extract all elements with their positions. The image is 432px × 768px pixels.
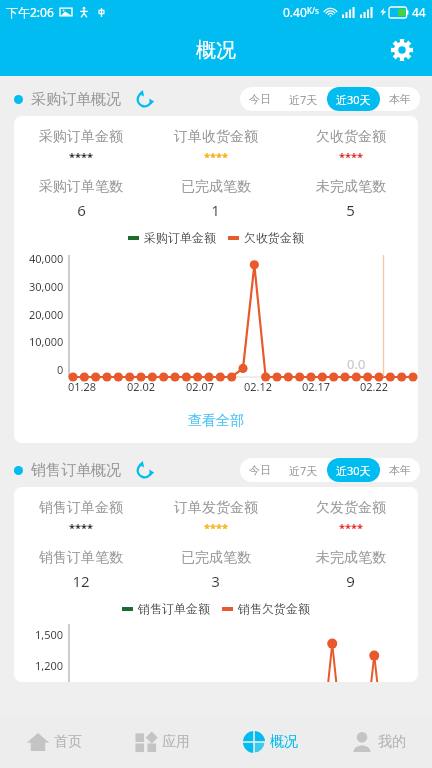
staticText: 20,000: [29, 307, 64, 322]
staticText: 欠收货金额: [244, 230, 304, 245]
staticText: 采购订单金额: [144, 230, 216, 245]
staticText: 3: [211, 571, 220, 591]
staticText: 销售订单笔数: [39, 549, 123, 567]
staticText: 首页: [54, 733, 82, 751]
button[interactable]: 近30天: [327, 87, 380, 111]
staticText: 12: [72, 571, 90, 591]
staticText: 今日: [249, 92, 271, 106]
button[interactable]: 本年: [380, 87, 420, 111]
button[interactable]: 本年: [380, 458, 420, 482]
staticText: 本年: [389, 92, 411, 106]
staticText: 0: [57, 362, 64, 377]
staticText: 概况: [270, 733, 298, 751]
button[interactable]: 今日: [240, 458, 280, 482]
button[interactable]: 应用: [108, 716, 216, 768]
button[interactable]: Refresh: [131, 86, 157, 112]
button[interactable]: 近30天: [327, 458, 380, 482]
button[interactable]: 近7天: [280, 87, 327, 111]
staticText: 销售订单金额: [138, 601, 210, 616]
staticText: ****: [69, 149, 93, 164]
staticText: 已完成笔数: [181, 549, 251, 567]
staticText: 0.0: [347, 355, 366, 373]
staticText: 订单收货金额: [174, 128, 258, 146]
staticText: 1: [211, 200, 220, 220]
staticText: 近30天: [336, 463, 371, 478]
staticText: ****: [204, 520, 228, 535]
button[interactable]: Refresh: [131, 457, 157, 483]
staticText: 应用: [162, 733, 190, 751]
staticText: 未完成笔数: [316, 549, 386, 567]
staticText: 40,000: [29, 251, 64, 266]
staticText: 欠发货金额: [316, 499, 386, 517]
staticText: 02.22: [360, 379, 389, 394]
staticText: 1,200: [35, 658, 64, 673]
button[interactable]: 概况: [216, 716, 324, 768]
staticText: 1,500: [35, 627, 64, 642]
staticText: 下午2:06: [6, 4, 54, 20]
staticText: 采购订单金额: [39, 128, 123, 146]
staticText: 近7天: [289, 463, 318, 478]
staticText: 10,000: [29, 334, 64, 349]
button[interactable]: 近7天: [280, 458, 327, 482]
staticText: 已完成笔数: [181, 178, 251, 196]
staticText: 销售订单金额: [39, 499, 123, 517]
staticText: 采购订单笔数: [39, 178, 123, 196]
staticText: 6: [77, 200, 86, 220]
button[interactable]: 首页: [0, 716, 108, 768]
staticText: ****: [204, 149, 228, 164]
staticText: 5: [346, 200, 355, 220]
staticText: 查看全部: [188, 412, 244, 430]
staticText: 销售欠货金额: [238, 601, 310, 616]
staticText: 02.17: [302, 379, 331, 394]
staticText: 我的: [378, 733, 406, 751]
staticText: 今日: [249, 463, 271, 477]
button[interactable]: Settings: [382, 30, 422, 70]
staticText: K/s: [307, 5, 319, 16]
staticText: 近7天: [289, 92, 318, 107]
staticText: 未完成笔数: [316, 178, 386, 196]
staticText: 采购订单概况: [31, 90, 121, 109]
button[interactable]: 我的: [324, 716, 432, 768]
staticText: 02.12: [244, 379, 273, 394]
staticText: 订单发货金额: [174, 499, 258, 517]
staticText: 02.07: [186, 379, 215, 394]
staticText: 02.02: [127, 379, 156, 394]
staticText: ****: [339, 149, 363, 164]
staticText: 30,000: [29, 279, 64, 294]
staticText: 44: [412, 4, 426, 20]
staticText: 0.40: [283, 4, 307, 20]
staticText: 销售订单概况: [31, 461, 121, 480]
button[interactable]: 查看全部: [14, 399, 418, 443]
staticText: 9: [346, 571, 355, 591]
button[interactable]: 今日: [240, 87, 280, 111]
staticText: 概况: [196, 38, 236, 63]
staticText: 本年: [389, 463, 411, 477]
staticText: ****: [69, 520, 93, 535]
staticText: 近30天: [336, 92, 371, 107]
staticText: ****: [339, 520, 363, 535]
staticText: 欠收货金额: [316, 128, 386, 146]
staticText: 01.28: [68, 379, 97, 394]
